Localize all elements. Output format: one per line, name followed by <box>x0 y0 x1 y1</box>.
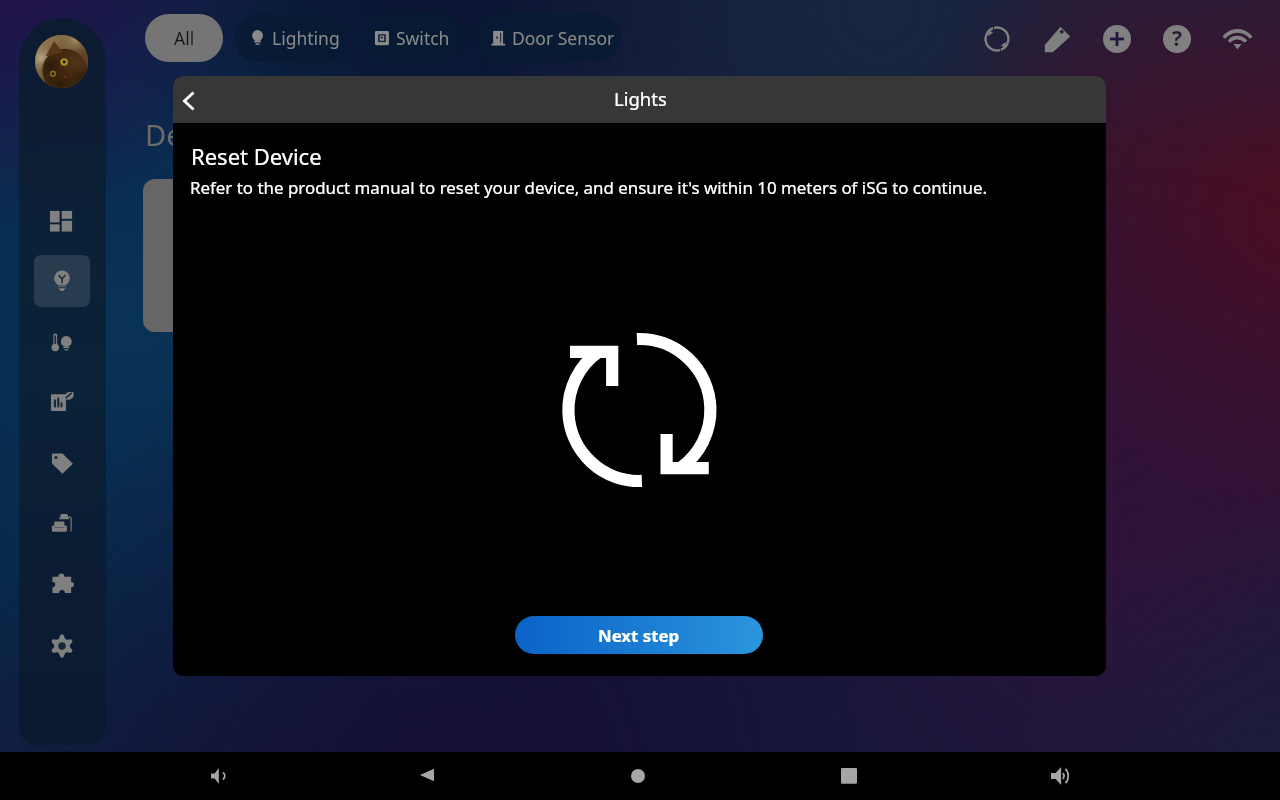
button[interactable]: Door Sensor <box>474 14 621 62</box>
staticText: Refer to the product manual to reset you… <box>190 176 987 199</box>
button[interactable]: Settings <box>34 620 90 672</box>
button[interactable]: Plugins <box>34 558 90 610</box>
staticText: Switch <box>396 26 450 50</box>
button[interactable]: Volume up <box>1036 752 1084 800</box>
button[interactable]: Back <box>403 752 451 800</box>
button[interactable] <box>143 179 373 332</box>
button[interactable]: Back <box>173 77 219 123</box>
staticText: Next step <box>598 624 680 647</box>
button[interactable]: Lighting <box>235 14 348 62</box>
staticText: Lights <box>614 86 667 111</box>
button[interactable]: Profile <box>35 35 88 88</box>
staticText: Lighting <box>272 26 340 50</box>
button[interactable]: Switch <box>360 14 463 62</box>
button[interactable]: Recents <box>825 752 873 800</box>
button[interactable]: Rooms <box>34 497 90 549</box>
button[interactable]: Next step <box>515 616 763 654</box>
staticText: Devices <box>145 115 249 154</box>
button[interactable]: Tags <box>34 437 90 489</box>
staticText: Reset Device <box>191 141 322 171</box>
button[interactable]: Climate <box>34 316 90 368</box>
button[interactable]: Edit <box>1031 13 1083 65</box>
staticText: All <box>174 26 195 50</box>
button[interactable]: Add <box>1091 13 1143 65</box>
button[interactable]: All <box>145 14 223 62</box>
button[interactable]: Wi-Fi <box>1211 13 1263 65</box>
button[interactable]: Energy <box>34 376 90 428</box>
staticText: ? <box>1172 25 1183 52</box>
button[interactable]: Help <box>1151 13 1203 65</box>
button[interactable]: Home <box>614 752 662 800</box>
button[interactable]: Refresh <box>971 13 1023 65</box>
button[interactable]: Lighting <box>34 255 90 307</box>
staticText: Door Sensor <box>512 26 615 50</box>
button[interactable]: Dashboard <box>34 195 90 247</box>
button[interactable]: Volume down <box>194 752 242 800</box>
